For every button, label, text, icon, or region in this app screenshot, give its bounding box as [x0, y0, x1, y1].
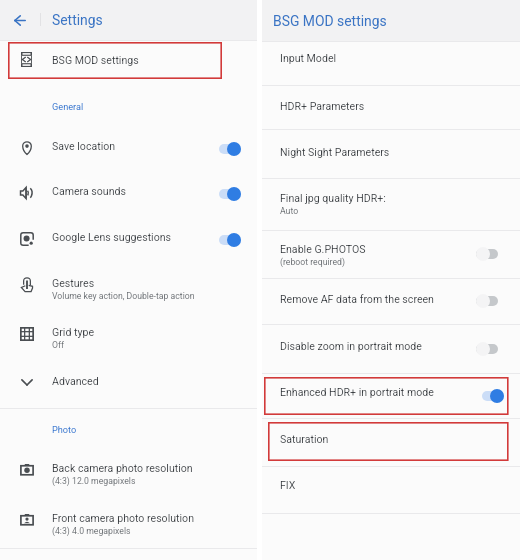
staticText: (4:3) 4.0 megapixels: [52, 526, 131, 536]
button[interactable]: Remove AF data from the screen: [476, 293, 498, 309]
button[interactable]: Night Sight Parameters: [262, 129, 520, 178]
button[interactable]: Camera sounds: [0, 181, 257, 217]
staticText: Disable zoom in portrait mode: [280, 340, 422, 352]
button[interactable]: Enhanced HDR+ in portrait mode: [262, 373, 520, 418]
button[interactable]: Enable G.PHOTOS: [476, 246, 498, 262]
button[interactable]: Back: [8, 9, 32, 31]
staticText: BSG MOD settings: [273, 13, 387, 29]
staticText: Grid type: [52, 326, 95, 338]
button[interactable]: Enhanced HDR+ in portrait mode: [482, 388, 504, 404]
button[interactable]: Enable G.PHOTOS: [262, 230, 520, 278]
staticText: HDR+ Parameters: [280, 100, 365, 112]
button[interactable]: Front camera photo resolution: [0, 508, 257, 552]
button[interactable]: Save location: [0, 136, 257, 172]
button[interactable]: Save location: [219, 141, 241, 157]
button[interactable]: Google Lens suggestions: [0, 227, 257, 263]
button[interactable]: Google Lens suggestions: [219, 232, 241, 248]
button[interactable]: Camera sounds: [219, 186, 241, 202]
staticText: FIX: [280, 479, 296, 491]
staticText: Final jpg quality HDR+:: [280, 192, 386, 204]
button[interactable]: Input Model: [262, 41, 520, 85]
staticText: Remove AF data from the screen: [280, 293, 434, 305]
button[interactable]: FIX: [262, 466, 520, 513]
staticText: General: [52, 101, 84, 112]
staticText: Save location: [52, 140, 116, 152]
staticText: Night Sight Parameters: [280, 146, 390, 158]
staticText: Enable G.PHOTOS: [280, 243, 366, 255]
button[interactable]: Grid type: [0, 322, 257, 366]
staticText: BSG MOD settings: [52, 54, 139, 66]
staticText: Gestures: [52, 277, 95, 289]
staticText: Advanced: [52, 375, 99, 387]
button[interactable]: Back camera photo resolution: [0, 458, 257, 502]
staticText: Saturation: [280, 433, 329, 445]
staticText: Input Model: [280, 52, 337, 64]
staticText: (reboot required): [280, 257, 345, 267]
staticText: Volume key action, Double-tap action: [52, 291, 195, 301]
staticText: Photo: [52, 424, 77, 435]
button[interactable]: HDR+ Parameters: [262, 85, 520, 129]
staticText: Back camera photo resolution: [52, 462, 193, 474]
staticText: (4:3) 12.0 megapixels: [52, 476, 136, 486]
staticText: Enhanced HDR+ in portrait mode: [280, 386, 434, 398]
button[interactable]: Disable zoom in portrait mode: [262, 324, 520, 373]
button[interactable]: Saturation: [262, 418, 520, 466]
button[interactable]: Final jpg quality HDR+:: [262, 178, 520, 230]
staticText: Settings: [52, 12, 103, 28]
button[interactable]: BSG MOD settings: [8, 42, 222, 79]
staticText: Google Lens suggestions: [52, 231, 172, 243]
button[interactable]: Advanced: [0, 371, 257, 407]
button[interactable]: Remove AF data from the screen: [262, 278, 520, 324]
staticText: Front camera photo resolution: [52, 512, 195, 524]
staticText: Auto: [280, 206, 299, 216]
button[interactable]: Disable zoom in portrait mode: [476, 341, 498, 357]
button[interactable]: Gestures: [0, 273, 257, 317]
staticText: Camera sounds: [52, 185, 126, 197]
staticText: Off: [52, 340, 65, 350]
